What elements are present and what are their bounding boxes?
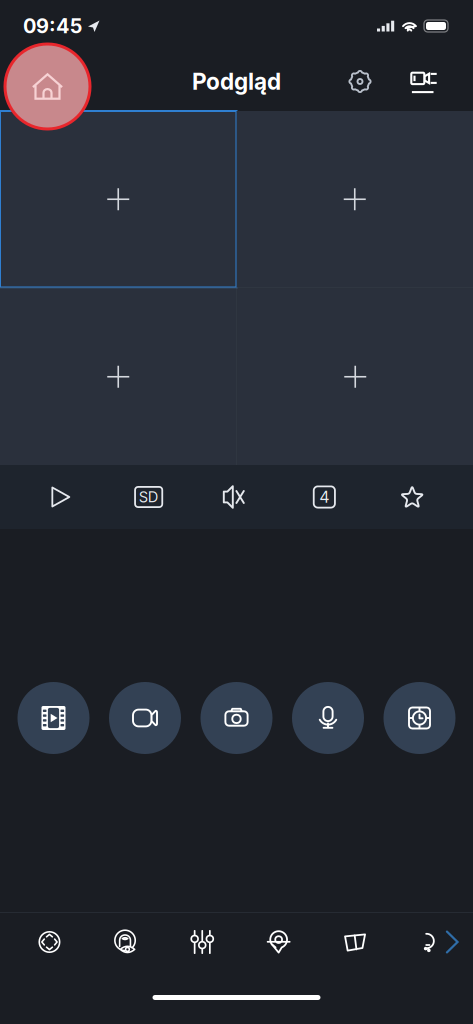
button[interactable]: Camera 2	[236, 111, 473, 287]
button[interactable]: Mute	[209, 475, 263, 519]
button[interactable]: Presets	[240, 913, 317, 971]
button[interactable]: Home	[5, 44, 90, 129]
staticText: 4	[319, 487, 329, 507]
button[interactable]: More tools	[436, 913, 468, 971]
button[interactable]: Layout 4	[297, 475, 351, 519]
button[interactable]: Record video	[109, 682, 181, 754]
button[interactable]: Washer	[393, 913, 436, 971]
button[interactable]: Play	[34, 475, 88, 519]
staticText: Podgląd	[192, 68, 281, 95]
button[interactable]: Settings	[334, 55, 386, 107]
button[interactable]: Pan tilt	[11, 913, 88, 971]
button[interactable]: Talk	[292, 682, 364, 754]
button[interactable]: Favourite	[385, 475, 439, 519]
button[interactable]: Wiper	[317, 913, 393, 971]
button[interactable]: Image settings	[164, 913, 240, 971]
button[interactable]: Snapshot	[200, 682, 272, 754]
staticText: 09:45	[23, 14, 82, 38]
button[interactable]: Timeline	[383, 682, 455, 754]
button[interactable]: Camera list	[400, 57, 448, 105]
button[interactable]: Recordings	[17, 682, 89, 754]
button[interactable]: Camera 1	[0, 111, 236, 287]
button[interactable]: Stream quality	[122, 475, 176, 519]
button[interactable]: Camera 4	[237, 288, 473, 465]
button[interactable]: Privacy mask	[88, 913, 164, 971]
staticText: SD	[139, 488, 159, 506]
button[interactable]: Camera 3	[0, 288, 236, 465]
